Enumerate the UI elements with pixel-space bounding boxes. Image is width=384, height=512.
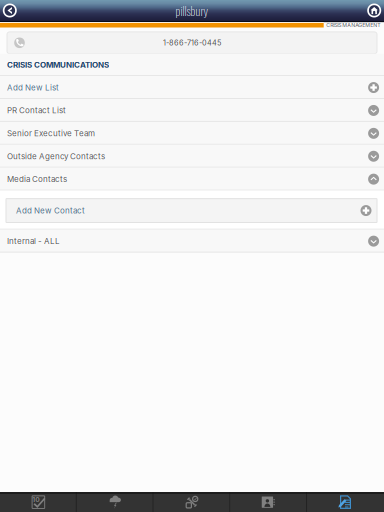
button[interactable]: Back	[0, 0, 20, 21]
button[interactable]: Add New List	[0, 76, 384, 99]
staticText: PR Contact List	[7, 106, 66, 115]
staticText: Internal - ALL	[7, 236, 60, 246]
button[interactable]: 1-866-716-0445	[0, 28, 384, 54]
button[interactable]: Internal - ALL	[0, 230, 384, 253]
button[interactable]: Contacts	[230, 492, 307, 512]
button[interactable]: Documents	[307, 492, 384, 512]
button[interactable]: Media Contacts	[0, 168, 384, 191]
button[interactable]: PR Contact List	[0, 99, 384, 122]
staticText: CRISIS MANAGEMENT	[326, 22, 380, 28]
staticText: Add New List	[7, 83, 59, 92]
staticText: Outside Agency Contacts	[7, 151, 105, 161]
button[interactable]: Senior Executive Team	[0, 122, 384, 145]
button[interactable]: Weather	[77, 492, 154, 512]
button[interactable]: Share	[154, 492, 230, 512]
staticText: CRISIS COMMUNICATIONS	[7, 60, 109, 70]
staticText: pillsbury	[175, 2, 208, 19]
button[interactable]: Tasks	[0, 492, 77, 512]
button[interactable]: Home	[364, 0, 384, 21]
button[interactable]: Outside Agency Contacts	[0, 145, 384, 168]
button[interactable]: Add New Contact	[0, 191, 384, 230]
staticText: 10	[32, 495, 39, 504]
staticText: Media Contacts	[7, 174, 67, 184]
staticText: 1-866-716-0445	[163, 38, 221, 47]
staticText: Add New Contact	[16, 206, 85, 215]
staticText: Senior Executive Team	[7, 128, 95, 138]
